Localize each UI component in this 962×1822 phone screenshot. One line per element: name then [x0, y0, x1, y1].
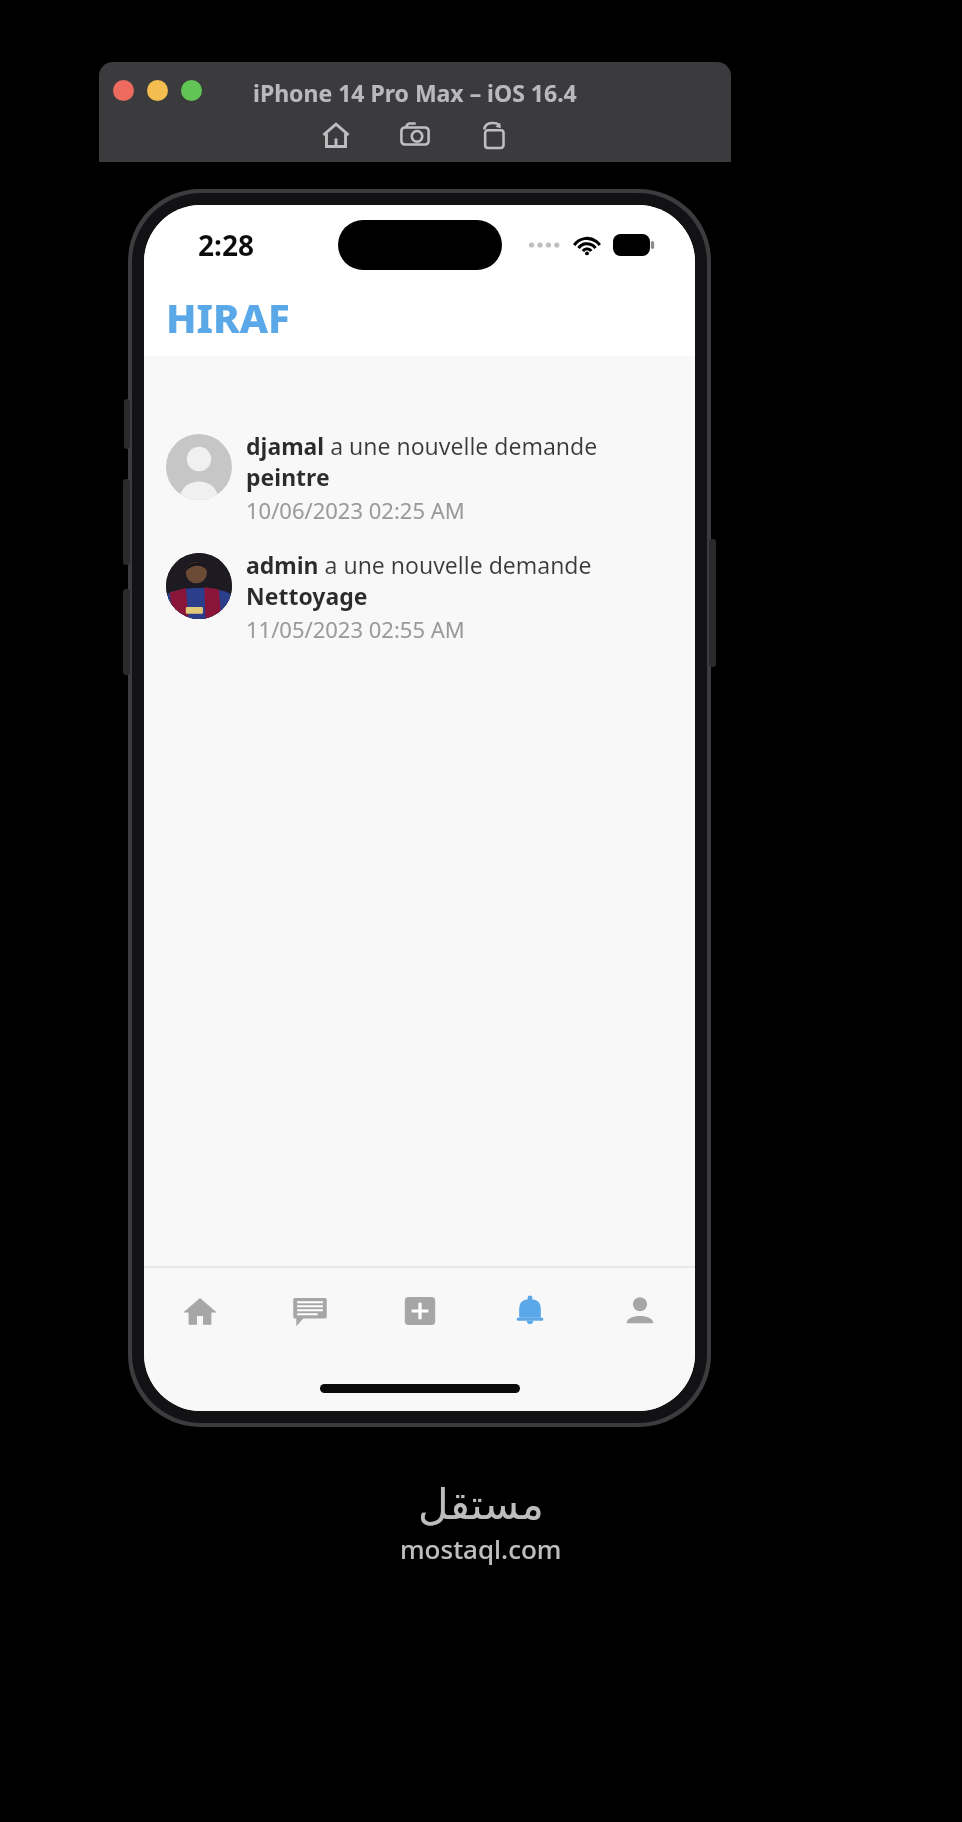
staticText: mostaql.com: [400, 1531, 562, 1566]
button[interactable]: Home: [319, 118, 353, 152]
staticText: 10/06/2023 02:25 AM: [246, 495, 465, 525]
staticText: peintre: [246, 461, 330, 492]
button[interactable]: [113, 80, 134, 101]
button[interactable]: Messages: [255, 1269, 365, 1353]
button[interactable]: Add: [365, 1269, 475, 1353]
staticText: مستقل: [418, 1480, 544, 1529]
button[interactable]: Notifications: [475, 1269, 585, 1353]
staticText: djamal a une nouvelle demande: [246, 430, 598, 461]
staticText: Nettoyage: [246, 580, 368, 611]
button[interactable]: [181, 80, 202, 101]
staticText: admin a une nouvelle demande: [246, 549, 592, 580]
staticText: HIRAF: [166, 290, 290, 344]
button[interactable]: djamal a une nouvelle demande: [144, 428, 695, 535]
staticText: 11/05/2023 02:55 AM: [246, 614, 465, 644]
button[interactable]: Screenshot: [398, 118, 432, 152]
button[interactable]: Home: [144, 1269, 255, 1353]
button[interactable]: Profile: [585, 1269, 695, 1353]
button[interactable]: admin a une nouvelle demande: [144, 547, 695, 654]
button[interactable]: [147, 80, 168, 101]
staticText: 2:28: [198, 226, 254, 264]
button[interactable]: Rotate: [477, 118, 511, 152]
staticText: iPhone 14 Pro Max – iOS 16.4: [253, 77, 577, 108]
